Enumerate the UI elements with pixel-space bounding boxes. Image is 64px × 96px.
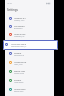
staticText: System: [14, 79, 22, 82]
staticText: Google: [14, 52, 22, 55]
staticText: Assistant, re: [14, 35, 25, 37]
button[interactable]: Apps & noti: [5, 31, 54, 39]
staticText: Screen time: [14, 72, 24, 74]
staticText: Settings: [7, 8, 18, 12]
staticText: ●●▮: [46, 2, 51, 4]
staticText: Labs, Link: [14, 63, 23, 65]
staticText: Languages: [14, 81, 24, 83]
button[interactable]: Network & i: [5, 15, 54, 23]
staticText: Services & p: [14, 54, 25, 56]
button[interactable]: About phon: [5, 86, 54, 95]
staticText: About phon: [14, 88, 26, 91]
staticText: Bluetooth: [14, 27, 23, 29]
button[interactable]: Google: [5, 50, 54, 59]
staticText: Apps & noti: [14, 33, 26, 36]
staticText: Digital Well: [14, 70, 26, 73]
button[interactable]: Digital Well: [5, 68, 54, 77]
button[interactable]: Advanced fe: [5, 59, 54, 68]
staticText: Mobile, Wi-F: [14, 19, 25, 21]
staticText: Accounts and b: [11, 43, 27, 46]
button[interactable]: Connected: [5, 23, 54, 31]
button[interactable]: Accounts and b: [3, 40, 58, 50]
staticText: 10:30: [7, 2, 12, 5]
button[interactable]: System: [5, 77, 54, 86]
staticText: Device info: [14, 90, 24, 92]
staticText: Network & i: [14, 17, 26, 20]
staticText: Connected: [14, 25, 25, 28]
staticText: Samsung Cloud, S: [11, 45, 27, 47]
staticText: Advanced fe: [14, 61, 27, 64]
